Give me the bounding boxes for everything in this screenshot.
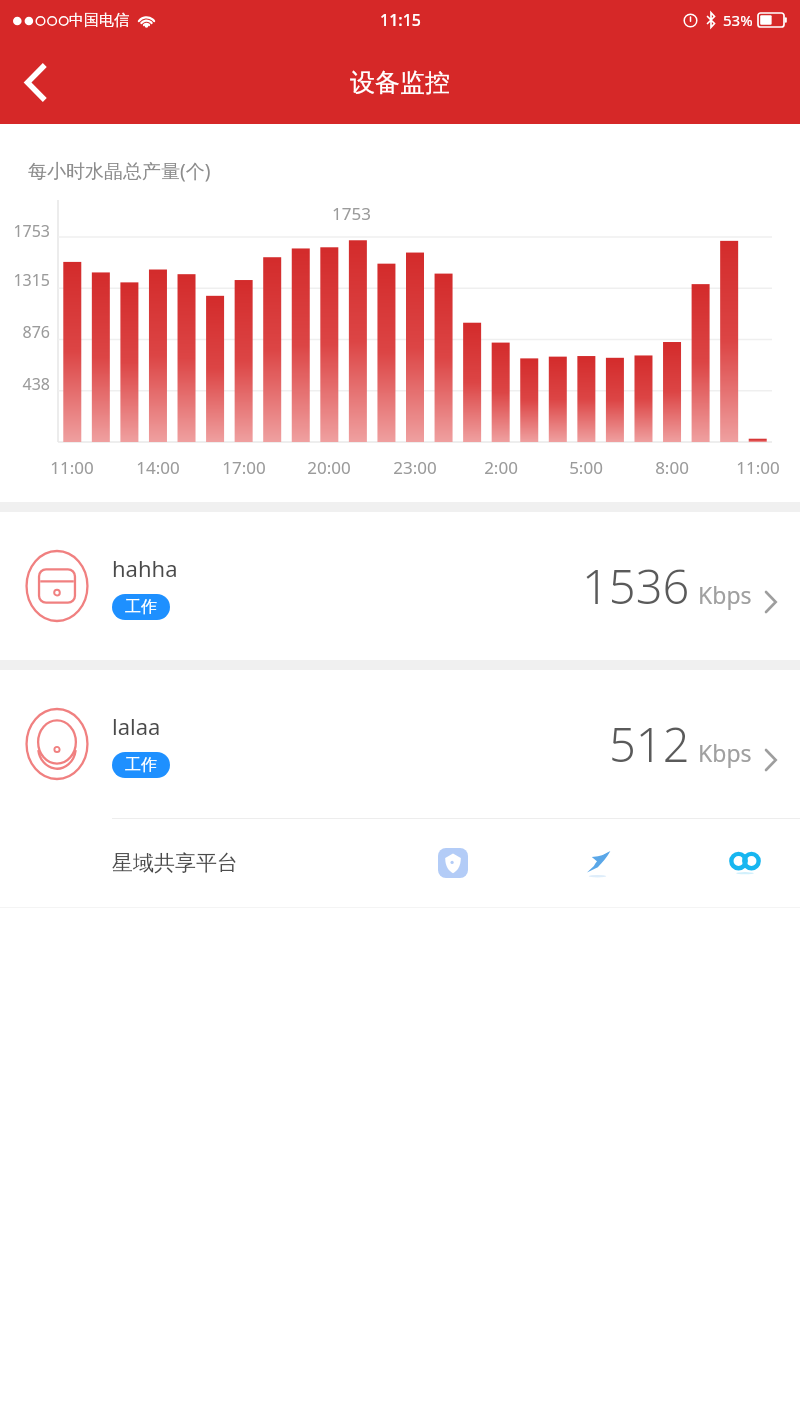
staticText: Kbps: [698, 737, 752, 768]
staticText: 1753: [332, 202, 371, 225]
button[interactable]: Infinity app: [718, 836, 772, 890]
staticText: Kbps: [698, 579, 752, 610]
staticText: 11:00: [32, 456, 112, 479]
staticText: 23:00: [375, 456, 455, 479]
staticText: 11:15: [380, 9, 421, 31]
staticText: 14:00: [118, 456, 198, 479]
staticText: 2:00: [461, 456, 541, 479]
staticText: 11:00: [718, 456, 798, 479]
staticText: 20:00: [289, 456, 369, 479]
staticText: 1536: [582, 554, 690, 618]
staticText: 8:00: [632, 456, 712, 479]
staticText: 438: [0, 373, 50, 395]
staticText: hahha: [112, 553, 178, 583]
staticText: 工作: [125, 755, 157, 775]
staticText: 每小时水晶总产量(个): [28, 158, 211, 184]
staticText: 星域共享平台: [112, 850, 238, 876]
button[interactable]: lalaa: [0, 670, 800, 818]
staticText: 5:00: [546, 456, 626, 479]
button[interactable]: hahha: [0, 512, 800, 660]
button[interactable]: Back: [4, 51, 66, 113]
staticText: 工作: [125, 597, 157, 617]
button[interactable]: Swallow app: [572, 836, 626, 890]
staticText: 设备监控: [350, 67, 450, 98]
staticText: 中国电信: [69, 11, 129, 30]
staticText: 512: [609, 712, 690, 776]
staticText: 17:00: [204, 456, 284, 479]
staticText: lalaa: [112, 711, 161, 741]
staticText: 876: [0, 321, 50, 343]
staticText: 1315: [0, 269, 50, 291]
staticText: 53%: [723, 10, 753, 30]
staticText: 1753: [0, 220, 50, 242]
button[interactable]: Shield app: [426, 836, 480, 890]
